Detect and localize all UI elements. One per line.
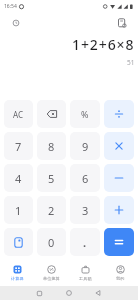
staticText: AC xyxy=(13,109,24,120)
staticText: 51 xyxy=(127,58,135,67)
staticText: . xyxy=(83,235,87,250)
staticText: 1 xyxy=(15,203,22,218)
staticText: 7 xyxy=(15,139,22,154)
staticText: 1+2+6×8 xyxy=(72,35,135,54)
staticText: 3 xyxy=(82,203,89,218)
button[interactable]: 6 xyxy=(70,164,100,192)
button[interactable]: 我的 xyxy=(103,260,138,286)
button[interactable]: 5 xyxy=(37,164,66,192)
staticText: 5 xyxy=(48,171,55,186)
button[interactable]: 7 xyxy=(4,132,33,160)
button[interactable] xyxy=(104,228,134,256)
button[interactable]: 8 xyxy=(37,132,66,160)
staticText: 6 xyxy=(82,171,89,186)
staticText: 16:54 xyxy=(4,3,17,10)
button[interactable] xyxy=(104,196,134,224)
button[interactable] xyxy=(91,286,105,300)
button[interactable] xyxy=(10,17,22,29)
button[interactable]: % xyxy=(70,100,100,128)
button[interactable]: 4 xyxy=(4,164,33,192)
button[interactable]: 单位换算 xyxy=(34,260,68,286)
button[interactable] xyxy=(104,100,134,128)
button[interactable]: 3 xyxy=(70,196,100,224)
button[interactable] xyxy=(116,17,128,29)
staticText: 工具箱 xyxy=(79,276,92,281)
button[interactable]: 2 xyxy=(37,196,66,224)
button[interactable]: 9 xyxy=(70,132,100,160)
staticText: 单位换算 xyxy=(43,276,60,281)
button[interactable] xyxy=(37,100,66,128)
button[interactable]: . xyxy=(70,228,100,256)
staticText: 2 xyxy=(48,203,55,218)
button[interactable] xyxy=(104,132,134,160)
button[interactable] xyxy=(104,164,134,192)
staticText: 0 xyxy=(48,235,55,250)
button[interactable]: 1 xyxy=(4,196,33,224)
staticText: % xyxy=(81,108,89,120)
button[interactable]: 计算器 xyxy=(0,260,34,286)
button[interactable]: 0 xyxy=(37,228,66,256)
staticText: 计算器 xyxy=(11,276,24,281)
button[interactable] xyxy=(32,286,46,300)
button[interactable]: AC xyxy=(4,100,33,128)
button[interactable] xyxy=(4,228,33,256)
button[interactable]: 工具箱 xyxy=(68,260,103,286)
staticText: 4 xyxy=(15,171,22,186)
staticText: 我的 xyxy=(116,276,125,281)
button[interactable] xyxy=(62,286,76,300)
staticText: 8 xyxy=(48,139,55,154)
staticText: 9 xyxy=(82,139,89,154)
